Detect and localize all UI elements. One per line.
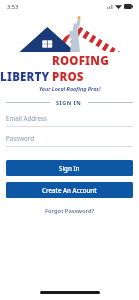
staticText: SIGN IN bbox=[56, 99, 82, 106]
staticText: Email Address bbox=[6, 114, 47, 122]
staticText: 3:53 bbox=[7, 3, 19, 11]
button[interactable]: Create An Account bbox=[6, 182, 133, 198]
staticText: Your Local Roofing Pros! bbox=[39, 85, 101, 92]
staticText: Password bbox=[6, 134, 34, 142]
staticText: LIBERTY bbox=[0, 69, 50, 85]
staticText: Create An Account bbox=[42, 186, 97, 194]
button[interactable]: Forgot Password? bbox=[0, 205, 139, 217]
other: Home bbox=[0, 284, 139, 300]
button[interactable]: Sign In bbox=[6, 160, 133, 176]
staticText: ROOFING PROS bbox=[52, 53, 139, 85]
button[interactable]: Password bbox=[6, 134, 133, 147]
staticText: Forgot Password? bbox=[45, 207, 95, 215]
button[interactable]: Email Address bbox=[6, 114, 133, 127]
staticText: Sign In bbox=[59, 164, 80, 172]
